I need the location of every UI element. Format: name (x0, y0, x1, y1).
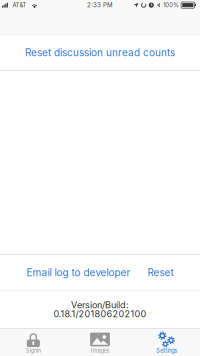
staticText: Signin (26, 347, 41, 354)
button[interactable]: Email log to developer (26, 266, 130, 279)
staticText: Email log to developer (26, 266, 130, 279)
button[interactable]: Settings (133, 329, 200, 356)
staticText: AT&T (12, 2, 26, 8)
staticText: Reset (147, 266, 173, 279)
staticText: Settings (156, 347, 177, 354)
staticText: 0.18.1/201806202100 (53, 308, 146, 319)
button[interactable]: Signin (0, 329, 67, 356)
button[interactable]: Images (67, 329, 133, 356)
button[interactable]: Reset discussion unread counts (0, 34, 200, 70)
button[interactable]: Reset (147, 266, 173, 279)
staticText: 100% (163, 2, 179, 9)
staticText: 2:33 PM (87, 1, 113, 9)
staticText: Version/Build: (71, 299, 129, 310)
staticText: Images (90, 347, 109, 354)
staticText: Reset discussion unread counts (25, 46, 175, 59)
